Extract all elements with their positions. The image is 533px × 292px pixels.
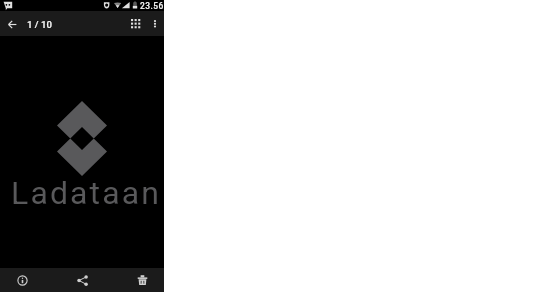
button[interactable]: More options (145, 11, 164, 36)
button[interactable]: Delete (130, 268, 154, 292)
staticText: Ladataan (4, 174, 168, 212)
button[interactable]: Grid view (125, 11, 145, 36)
staticText: 1 / 10 (27, 19, 52, 30)
button[interactable]: Share (70, 268, 94, 292)
staticText: 23.56 (140, 1, 164, 11)
button[interactable]: Info (10, 268, 34, 292)
button[interactable]: Back (0, 11, 25, 36)
